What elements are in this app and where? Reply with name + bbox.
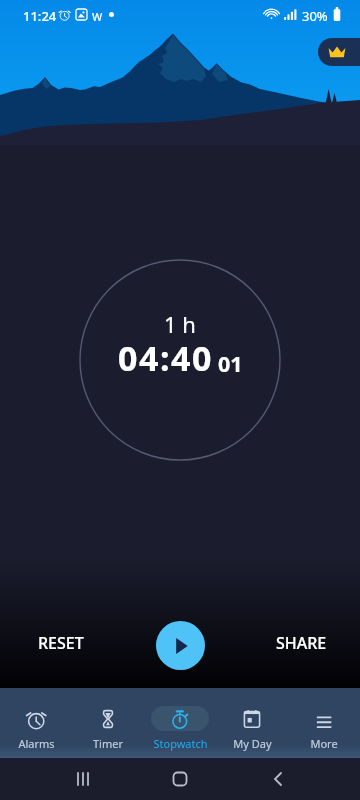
button[interactable]: Alarms [0, 688, 72, 758]
staticText: W [92, 9, 103, 24]
staticText: Stopwatch [153, 736, 208, 751]
button[interactable]: RESET [16, 617, 106, 669]
button[interactable]: Timer [72, 688, 144, 758]
staticText: 01 [218, 349, 243, 378]
staticText: My Day [233, 736, 272, 751]
button[interactable]: My Day [216, 688, 288, 758]
staticText: 04:40 [118, 335, 213, 381]
staticText: 30% [302, 7, 328, 25]
button[interactable]: More [288, 688, 360, 758]
staticText: RESET [38, 632, 84, 654]
button[interactable]: Start [156, 621, 205, 670]
staticText: More [310, 736, 338, 751]
button[interactable]: Premium [318, 38, 360, 66]
staticText: SHARE [276, 632, 327, 654]
staticText: Alarms [18, 736, 55, 751]
button[interactable]: Stopwatch [144, 688, 216, 758]
staticText: 1 h [164, 309, 196, 339]
button[interactable]: SHARE [256, 617, 346, 669]
staticText: 11:24 [23, 7, 57, 25]
staticText: Timer [93, 736, 123, 751]
